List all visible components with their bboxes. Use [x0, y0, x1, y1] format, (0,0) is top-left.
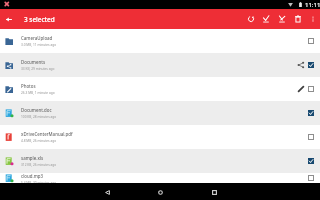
button[interactable]: Refresh — [243, 9, 259, 29]
button[interactable]: Document.doc — [0, 101, 320, 125]
staticText: 5.4 MB, 30 minutes ago — [21, 181, 57, 183]
button[interactable]: Not selected — [305, 29, 317, 53]
staticText: Photos — [21, 83, 36, 89]
staticText: 3.0 MB, 11 minutes ago — [21, 43, 57, 47]
button[interactable]: Move — [274, 9, 290, 29]
button[interactable]: Back — [0, 9, 18, 29]
staticText: 3 selected — [24, 15, 55, 24]
button[interactable]: Not selected — [305, 125, 317, 149]
staticText: 4.8 MB, 26 minutes ago — [21, 139, 57, 143]
staticText: 33 KB, 29 minutes ago — [21, 67, 55, 71]
button[interactable]: Selected — [305, 53, 317, 77]
staticText: 312 KB, 26 minutes ago — [21, 163, 57, 167]
button[interactable]: Selected — [305, 149, 317, 173]
button[interactable]: xDriveCenterManual.pdf — [0, 125, 320, 149]
button[interactable]: Not selected — [305, 173, 317, 183]
button[interactable]: Share — [297, 53, 304, 77]
button[interactable]: Photos — [0, 77, 320, 101]
staticText: 100 KB, 28 minutes ago — [21, 115, 57, 119]
staticText: CameraUpload — [21, 35, 53, 41]
button[interactable]: Recents — [202, 183, 226, 200]
button[interactable]: Not selected — [305, 77, 317, 101]
button[interactable]: Back — [95, 183, 119, 200]
button[interactable]: Home — [148, 183, 172, 200]
staticText: cloud.mp3 — [21, 173, 44, 179]
button[interactable]: cloud.mp3 — [0, 173, 320, 183]
button[interactable]: Selected — [305, 101, 317, 125]
staticText: Documents — [21, 59, 46, 65]
button[interactable]: Documents — [0, 53, 320, 77]
button[interactable]: More options — [305, 9, 320, 29]
button[interactable]: Select all — [258, 9, 274, 29]
staticText: 11:11 — [305, 1, 320, 9]
button[interactable]: sample.xls — [0, 149, 320, 173]
staticText: Document.doc — [21, 107, 52, 113]
button[interactable]: CameraUpload — [0, 29, 320, 53]
button[interactable]: Link — [297, 77, 304, 101]
staticText: xDriveCenterManual.pdf — [21, 131, 73, 137]
staticText: 26.3 MB, 1 minute ago — [21, 91, 55, 95]
button[interactable]: Delete — [290, 9, 306, 29]
staticText: sample.xls — [21, 155, 44, 161]
